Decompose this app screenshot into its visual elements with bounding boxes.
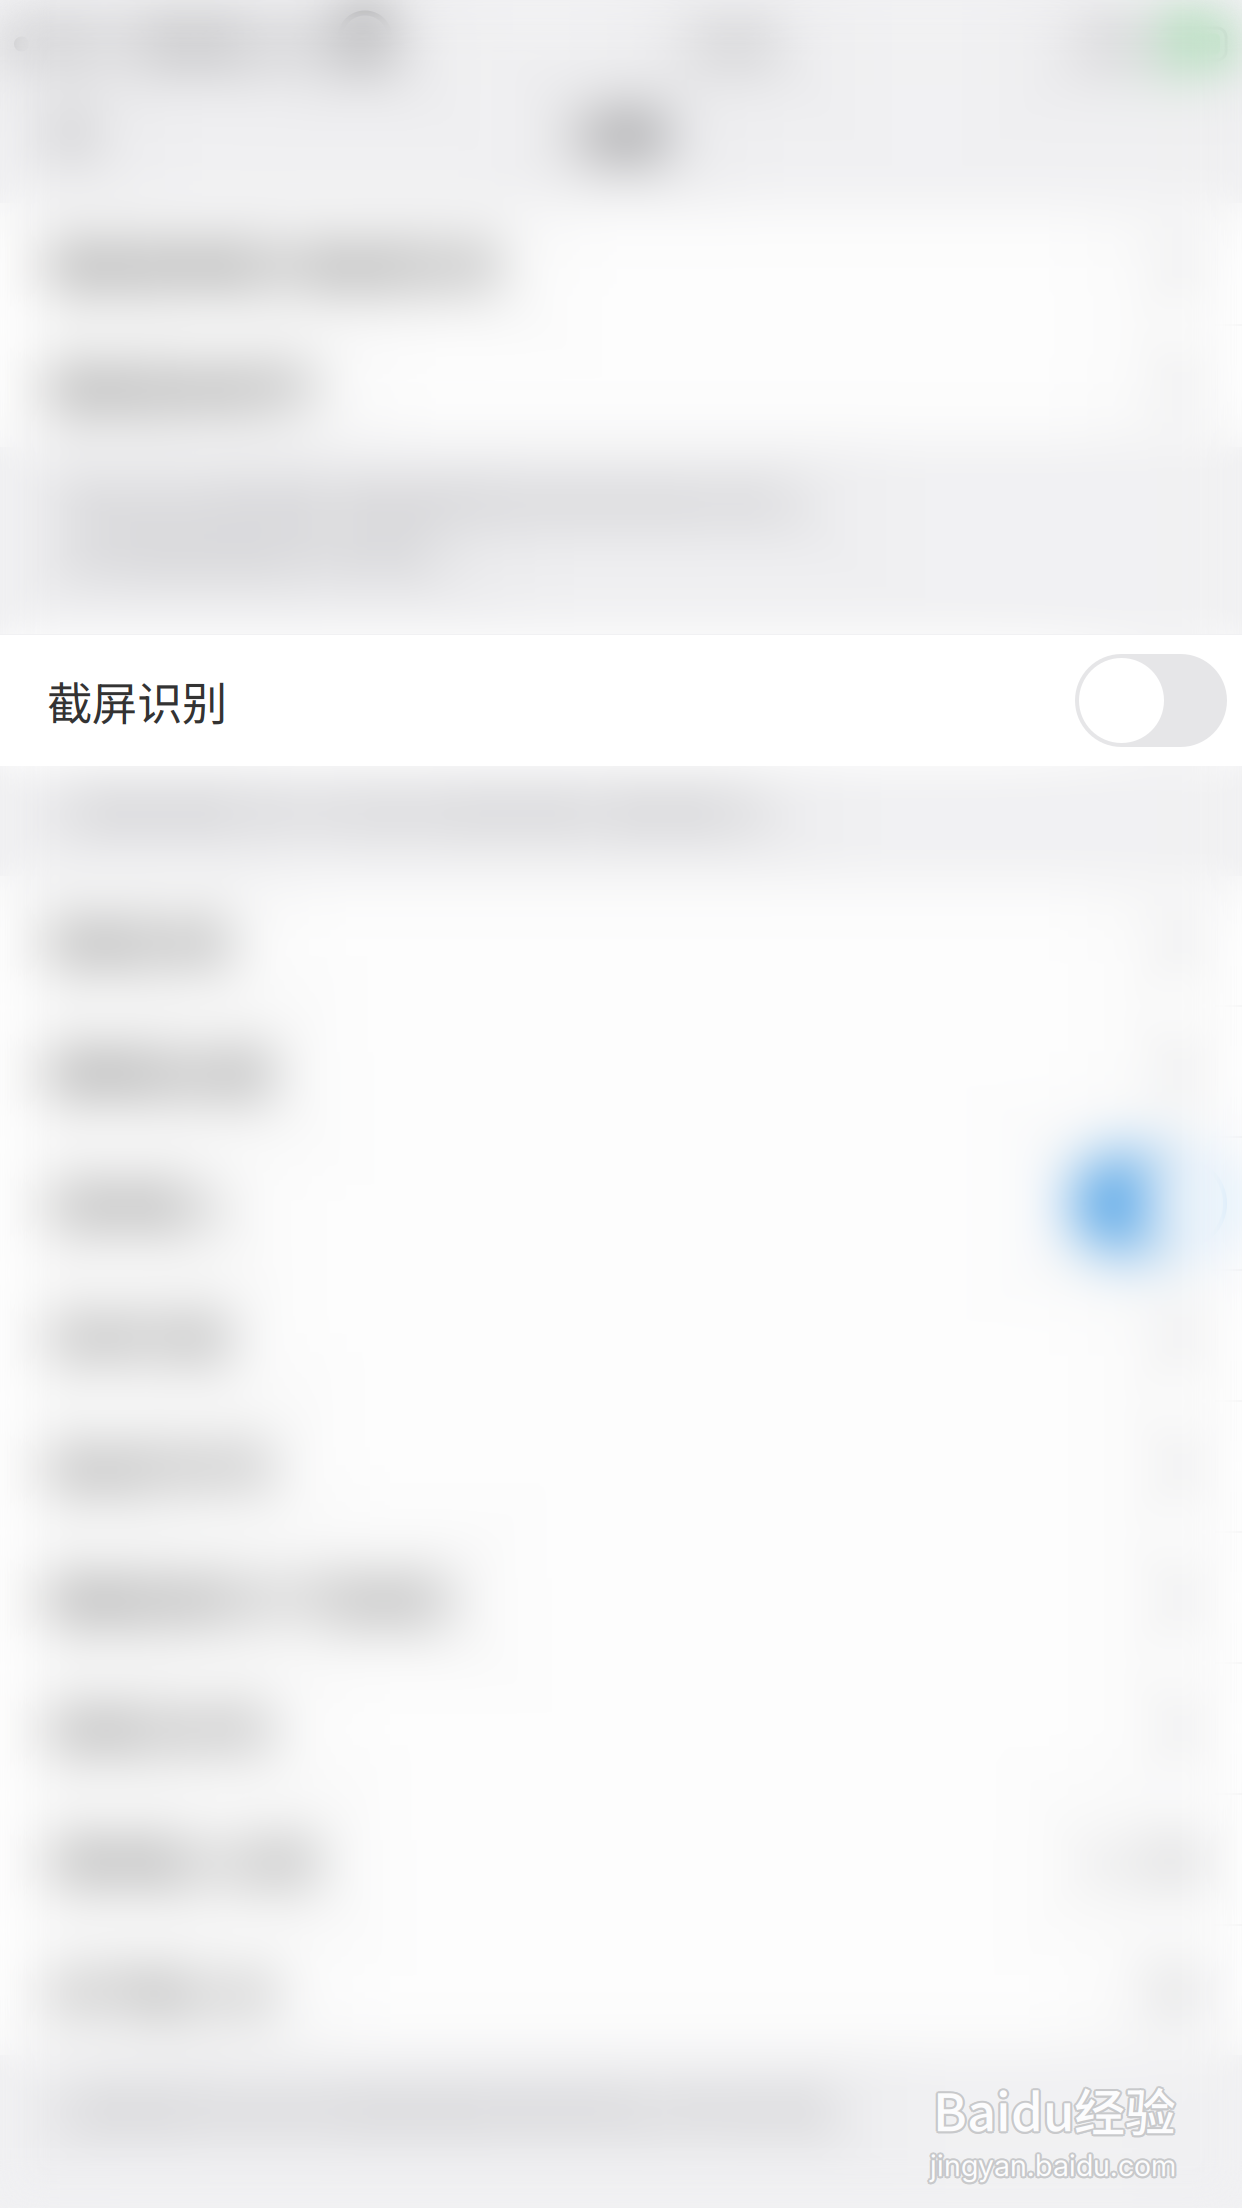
staticText: 设置 [577, 101, 665, 165]
staticText: 96% [1081, 21, 1146, 67]
staticText: 中国移动 [117, 19, 265, 69]
staticText: Baidu经验 [931, 2073, 1174, 2146]
button[interactable]: 键盘皮肤与个性装扮 [0, 1533, 1242, 1662]
button[interactable]: 智能纠错 [0, 876, 1242, 1005]
staticText: jingyan.baidu.com [930, 2148, 1176, 2183]
staticText: jingyan.baidu.com [932, 2146, 1178, 2182]
staticText: Baidu经验 [931, 2071, 1174, 2144]
staticText: 截屏识别 [47, 668, 227, 733]
staticText: 键盘按键音与触感反馈 [47, 231, 497, 296]
staticText: 关于输入法 [47, 1958, 272, 2023]
button[interactable]: 双拼方案 [0, 1271, 1242, 1400]
staticText: Baidu经验 [935, 2073, 1178, 2146]
staticText: Baidu经验 [933, 2070, 1176, 2144]
staticText: 并支持快捷短语与手写输入。 [58, 531, 474, 578]
staticText: 键盘皮肤与个性装扮 [47, 1565, 452, 1630]
button[interactable]: 清除输入记录 [0, 1795, 1242, 1924]
staticText: jingyan.baidu.com [928, 2146, 1174, 2182]
button[interactable]: 返回 [30, 89, 110, 177]
button[interactable]: 模糊音设置 [0, 1007, 1242, 1136]
staticText: jingyan.baidu.com [928, 2148, 1174, 2183]
staticText: 清除输入记录 [47, 1827, 317, 1892]
staticText: 表情与符号 [47, 1696, 272, 1761]
staticText: 智能纠错 [47, 908, 227, 973]
staticText: Baidu经验 [933, 2075, 1176, 2148]
button[interactable]: 截屏识别 [0, 635, 1242, 766]
button[interactable]: 语音输入 [0, 1138, 1242, 1269]
staticText: 开启后将在任意输入界面使用全新的候选词布局方式， [58, 477, 826, 523]
staticText: jingyan.baidu.com [928, 2149, 1174, 2185]
staticText: jingyan.baidu.com [930, 2146, 1176, 2181]
staticText: Baidu经验 [935, 2071, 1178, 2144]
button[interactable]: 键盘高度调节 [0, 326, 1242, 447]
staticText: jingyan.baidu.com [932, 2149, 1178, 2185]
staticText: 双拼方案 [47, 1303, 227, 1368]
staticText: jingyan.baidu.com [930, 2150, 1176, 2186]
staticText: Baidu经验 [935, 2074, 1178, 2147]
staticText: Baidu经验 [933, 2073, 1176, 2146]
staticText: 候选字字号 [47, 1434, 272, 1499]
button[interactable]: 表情与符号 [0, 1664, 1242, 1793]
button[interactable]: 候选字字号 [0, 1402, 1242, 1531]
staticText: jingyan.baidu.com [932, 2148, 1178, 2183]
staticText: 模糊音设置 [47, 1039, 272, 1104]
button[interactable]: 关于输入法 [0, 1926, 1242, 2055]
button[interactable]: 键盘按键音与触感反馈 [0, 203, 1242, 324]
staticText: Baidu经验 [931, 2074, 1174, 2147]
staticText: 语音输入 [47, 1171, 227, 1236]
staticText: 键盘高度调节 [47, 354, 317, 419]
